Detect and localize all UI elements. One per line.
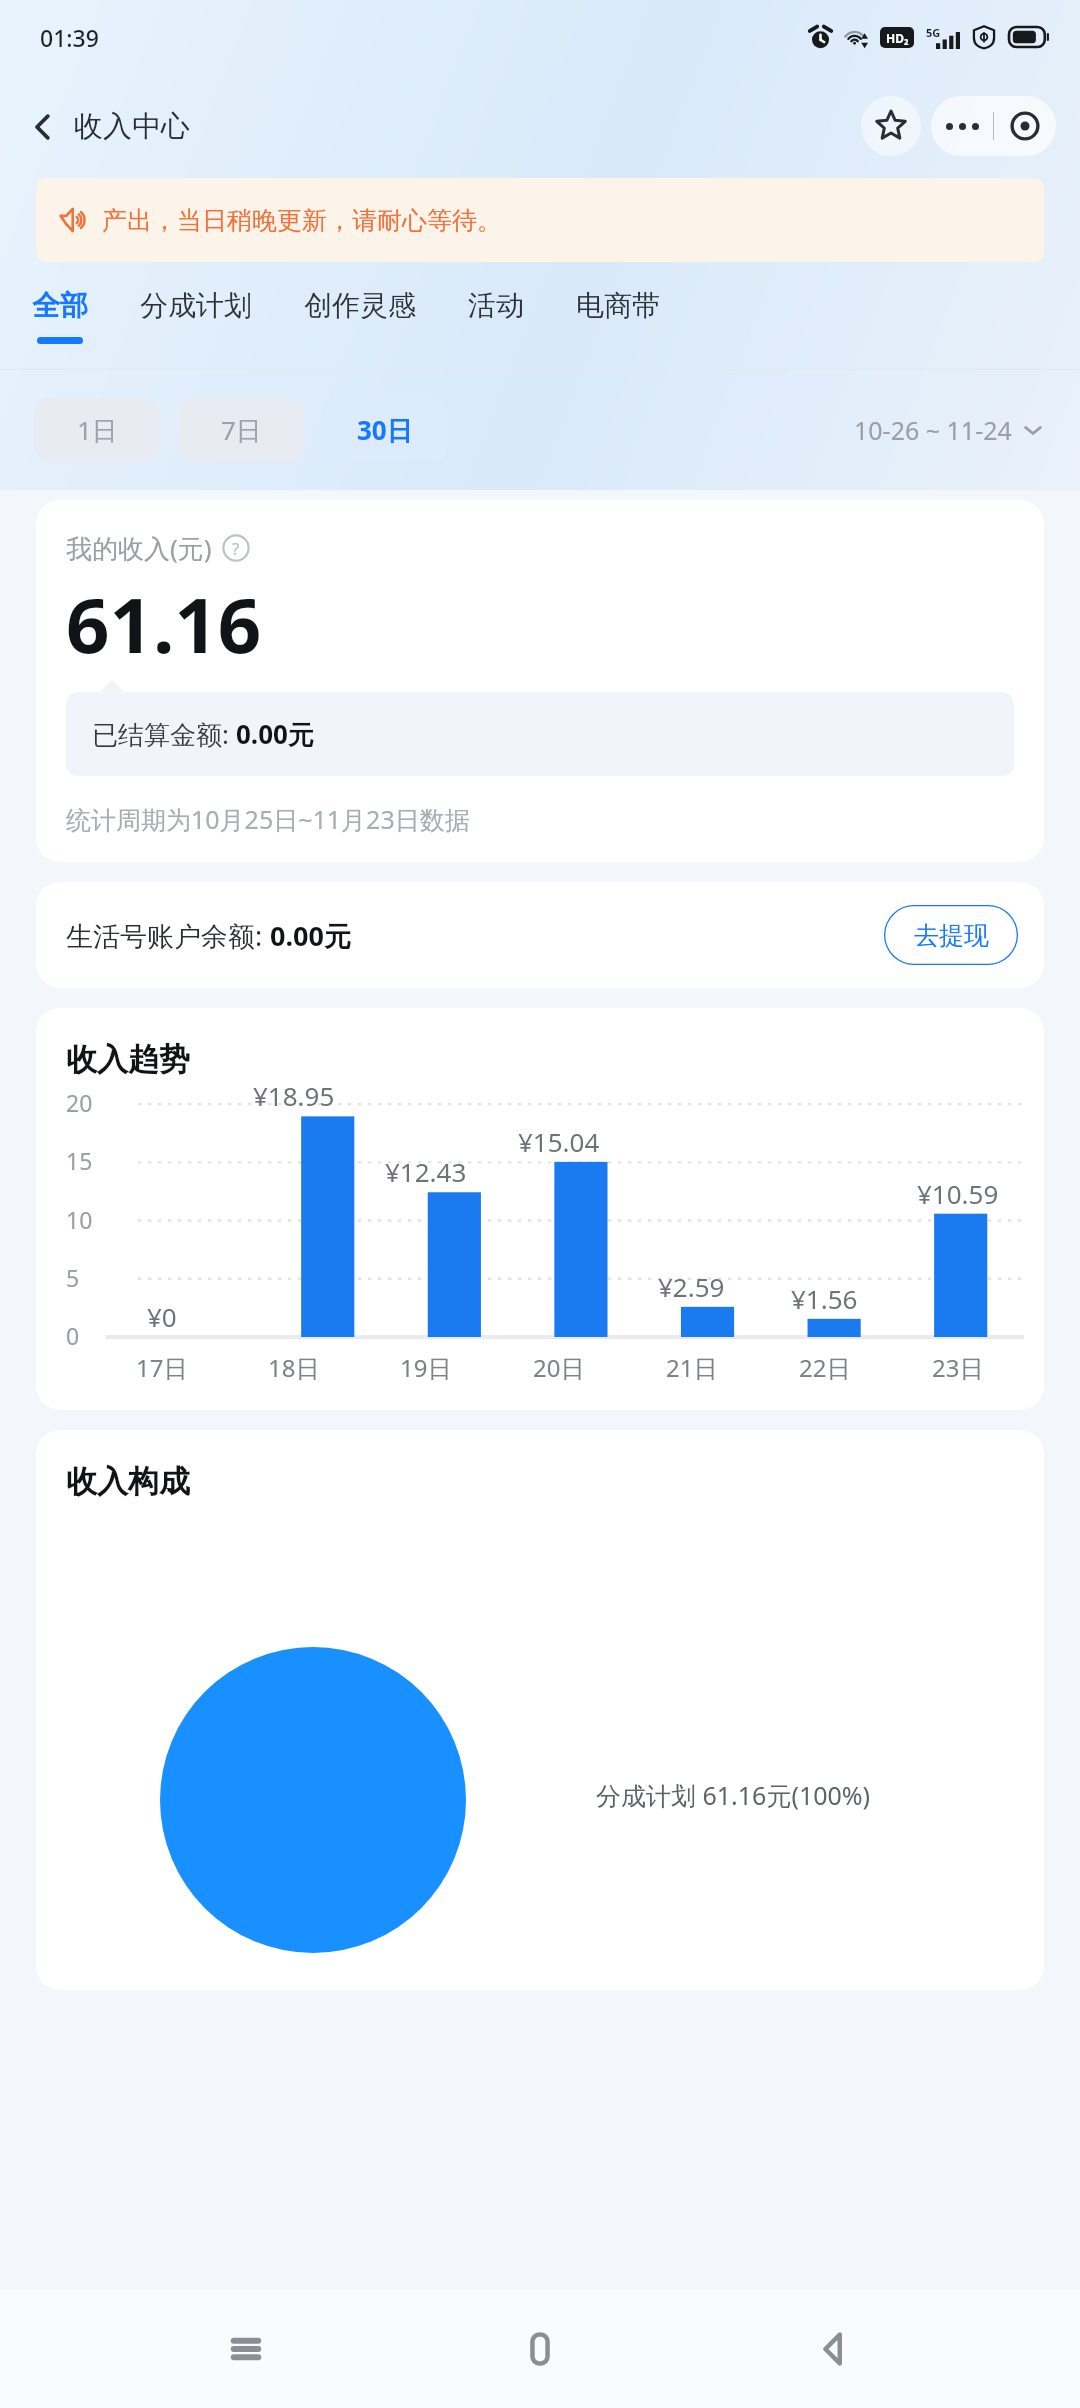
staticText: 23日 [932,1351,984,1384]
staticText: 15 [66,1145,93,1176]
staticText: 1日 [77,412,118,448]
staticText: 22日 [799,1351,851,1384]
button[interactable]: 活动 [464,262,528,370]
button[interactable]: 已结算金额: [66,692,1014,776]
button[interactable]: 分成计划 [136,262,256,370]
button[interactable]: 电商带 [572,262,664,370]
staticText: 21日 [666,1351,718,1384]
staticText: 19日 [400,1351,452,1384]
staticText: 去提现 [914,920,989,951]
staticText: ¥18.95 [253,1078,335,1113]
other: Back [28,112,58,142]
staticText: 7日 [221,412,262,448]
staticText: 全部 [32,288,88,323]
staticText: 已结算金额: [92,716,236,752]
staticText: 5 [66,1262,80,1293]
staticText: 20日 [533,1351,585,1384]
staticText: 分成计划 61.16元(100%) [596,1778,871,1812]
button[interactable]: Recents [198,2301,294,2397]
staticText: ¥15.04 [518,1124,600,1159]
button[interactable]: 生活号账户余额: [36,882,1044,988]
staticText: 我的收入(元) [66,530,212,566]
staticText: 0 [66,1320,80,1351]
button[interactable]: 10-26 ~ 11-24 [846,405,1052,455]
button[interactable]: Back [20,100,198,153]
staticText: 10 [66,1204,93,1235]
button[interactable]: Help [222,534,250,562]
button[interactable]: 7日 [178,398,304,462]
button[interactable]: 30日 [322,398,448,462]
staticText: 0.00元 [270,917,351,954]
staticText: ¥2.59 [658,1269,725,1304]
button[interactable]: 1日 [34,398,160,462]
staticText: 分成计划 [140,288,252,323]
staticText: ? [232,537,240,560]
button[interactable]: 产出，当日稍晚更新，请耐心等待。 [36,178,1044,262]
button[interactable]: Home [492,2301,588,2397]
button[interactable]: Favorite [861,96,921,156]
staticText: 统计周期为10月25日~11月23日数据 [66,802,470,836]
staticText: 收入构成 [66,1462,190,1501]
staticText: ¥0 [147,1299,177,1334]
staticText: 活动 [468,288,524,323]
staticText: 创作灵感 [304,288,416,323]
button[interactable]: 创作灵感 [300,262,420,370]
staticText: 产出，当日稍晚更新，请耐心等待。 [102,205,502,236]
staticText: 18日 [268,1351,320,1384]
staticText: 收入中心 [74,108,190,145]
staticText: 收入趋势 [66,1040,190,1079]
staticText: 20 [66,1087,93,1118]
button[interactable]: Back [786,2301,882,2397]
button[interactable]: More options [931,96,993,156]
staticText: 0.00元 [236,716,314,752]
staticText: 01:39 [40,22,99,53]
staticText: 10-26 ~ 11-24 [854,413,1012,447]
button[interactable]: Close [994,96,1056,156]
button[interactable]: 全部 [28,262,92,370]
button[interactable]: 去提现 [884,905,1018,965]
staticText: 30日 [357,412,413,448]
staticText: ¥10.59 [917,1176,999,1211]
staticText: HD₂ [886,30,909,46]
staticText: 17日 [136,1351,188,1384]
staticText: ¥12.43 [385,1154,467,1189]
staticText: 电商带 [576,288,660,323]
staticText: 61.16 [66,572,262,676]
staticText: ¥1.56 [791,1281,858,1316]
staticText: 5G [926,25,941,40]
staticText: 生活号账户余额: [66,917,270,954]
